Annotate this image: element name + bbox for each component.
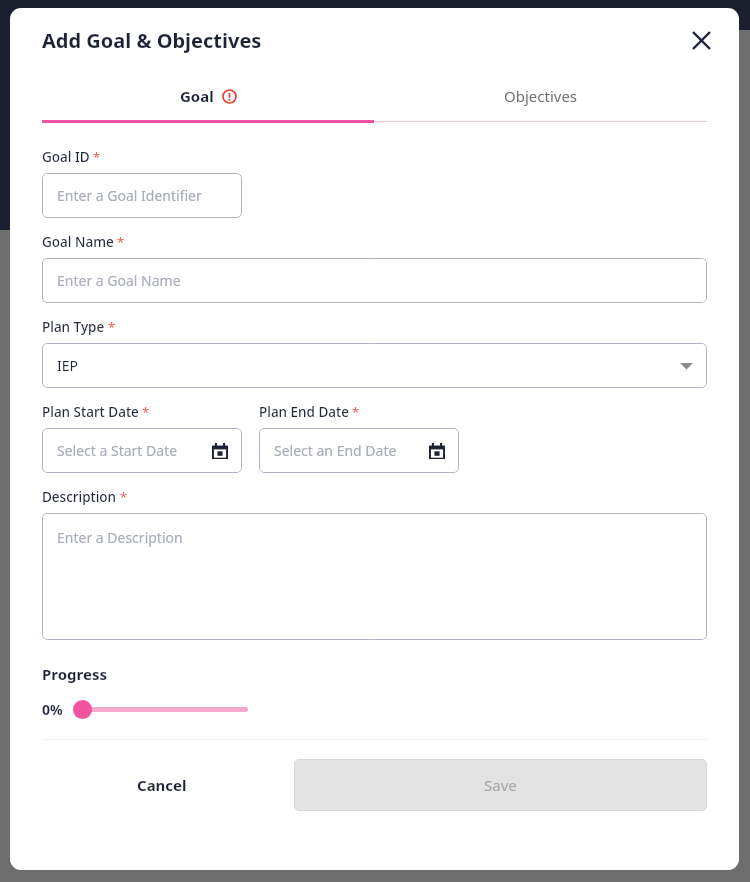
button[interactable]: Close [683,22,719,58]
staticText: Select a Start Date [57,441,178,460]
staticText: Plan Start Date [42,403,139,421]
staticText: Goal ID [42,148,90,166]
staticText: Enter a Description [57,528,183,547]
staticText: * [93,148,101,166]
staticText: 0% [42,700,63,719]
staticText: Progress [42,664,107,684]
staticText: Cancel [137,775,187,795]
other: Pick date [429,443,445,459]
button[interactable]: Objectives [374,72,707,120]
staticText: * [120,488,128,506]
staticText: Plan Type [42,318,105,336]
button[interactable]: Enter a Goal Identifier [42,173,242,218]
button[interactable]: Progress slider [42,699,248,719]
button[interactable]: Goal [42,72,374,120]
staticText: Description [42,488,117,506]
staticText: IEP [57,356,78,375]
staticText: Add Goal & Objectives [42,27,262,54]
button[interactable]: Select an End Date [259,428,459,473]
button[interactable]: Select a Start Date [42,428,242,473]
staticText: Enter a Goal Identifier [57,186,202,205]
staticText: Save [484,775,517,795]
other: Pick date [212,443,228,459]
button[interactable]: IEP [42,343,707,388]
button[interactable]: Enter a Description [42,513,707,640]
staticText: Enter a Goal Name [57,271,181,290]
staticText: * [142,403,150,421]
other: Open plan type menu [680,359,693,372]
button[interactable]: Save [294,759,707,811]
staticText: * [352,403,360,421]
staticText: Objectives [504,86,578,106]
staticText: * [117,233,125,251]
staticText: Select an End Date [274,441,397,460]
button[interactable]: Enter a Goal Name [42,258,707,303]
staticText: Goal Name [42,233,114,251]
staticText: Plan End Date [259,403,349,421]
staticText: * [108,318,116,336]
button[interactable]: Cancel [42,760,282,810]
staticText: Goal [180,86,214,106]
